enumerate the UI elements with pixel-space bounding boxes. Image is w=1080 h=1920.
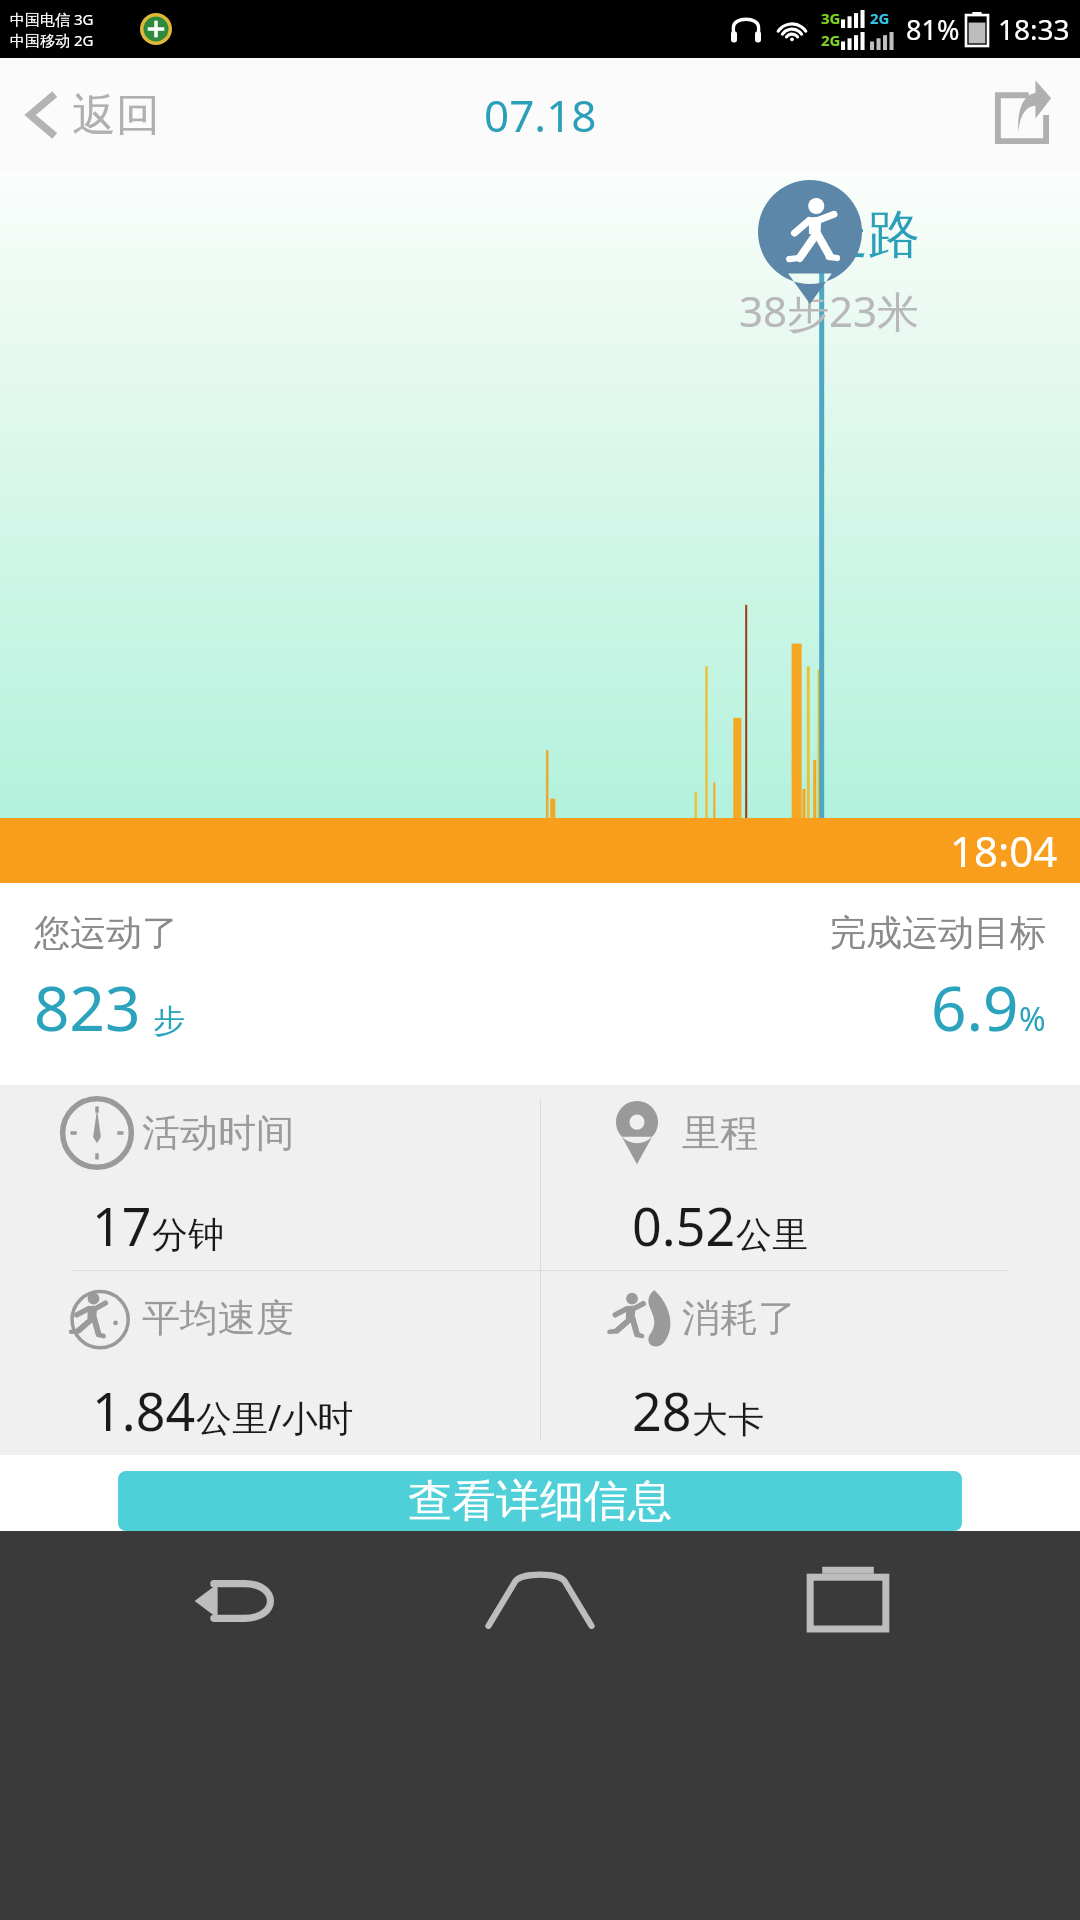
staticText: 中国移动 2G — [10, 30, 94, 50]
staticText: 0.52 — [632, 1190, 736, 1261]
staticText: 返回 — [72, 88, 160, 143]
staticText: 1.84 — [92, 1375, 196, 1446]
staticText: 2G — [870, 8, 890, 28]
staticText: 2G — [821, 30, 841, 50]
staticText: % — [1019, 997, 1046, 1041]
staticText: 消耗了 — [682, 1294, 796, 1342]
staticText: 平均速度 — [142, 1294, 294, 1342]
staticText: 大卡 — [692, 1397, 764, 1442]
button[interactable]: 活动时间 — [0, 1085, 540, 1270]
button[interactable]: Back — [158, 1531, 308, 1671]
button[interactable]: 里程 — [540, 1085, 1080, 1270]
button[interactable]: Share — [964, 58, 1080, 172]
button[interactable]: 返回 — [0, 58, 184, 172]
staticText: 823 — [34, 965, 141, 1049]
button[interactable]: Recents — [773, 1531, 923, 1671]
staticText: 分钟 — [152, 1212, 224, 1257]
staticText: 3G — [821, 8, 841, 28]
staticText: 18:33 — [998, 10, 1070, 48]
staticText: 公里/小时 — [196, 1393, 354, 1442]
staticText: 查看详细信息 — [408, 1474, 672, 1529]
staticText: 公里 — [736, 1212, 808, 1257]
button[interactable]: Home — [465, 1531, 615, 1671]
staticText: 步 — [153, 1001, 185, 1041]
staticText: 18:04 — [950, 822, 1058, 879]
staticText: 完成运动目标 — [830, 910, 1046, 955]
staticText: 6.9 — [931, 965, 1019, 1049]
staticText: 里程 — [682, 1109, 758, 1157]
button[interactable]: 平均速度 — [0, 1270, 540, 1455]
staticText: 活动时间 — [142, 1109, 294, 1157]
button[interactable]: 查看详细信息 — [118, 1471, 962, 1531]
button[interactable]: 消耗了 — [540, 1270, 1080, 1455]
staticText: 走路 — [816, 202, 920, 268]
staticText: 17 — [92, 1190, 152, 1261]
staticText: 38步23米 — [739, 282, 920, 339]
staticText: 81% — [906, 11, 960, 48]
staticText: 中国电信 3G — [10, 9, 94, 29]
staticText: 07.18 — [484, 85, 597, 145]
staticText: 您运动了 — [34, 910, 178, 955]
staticText: 28 — [632, 1375, 692, 1446]
